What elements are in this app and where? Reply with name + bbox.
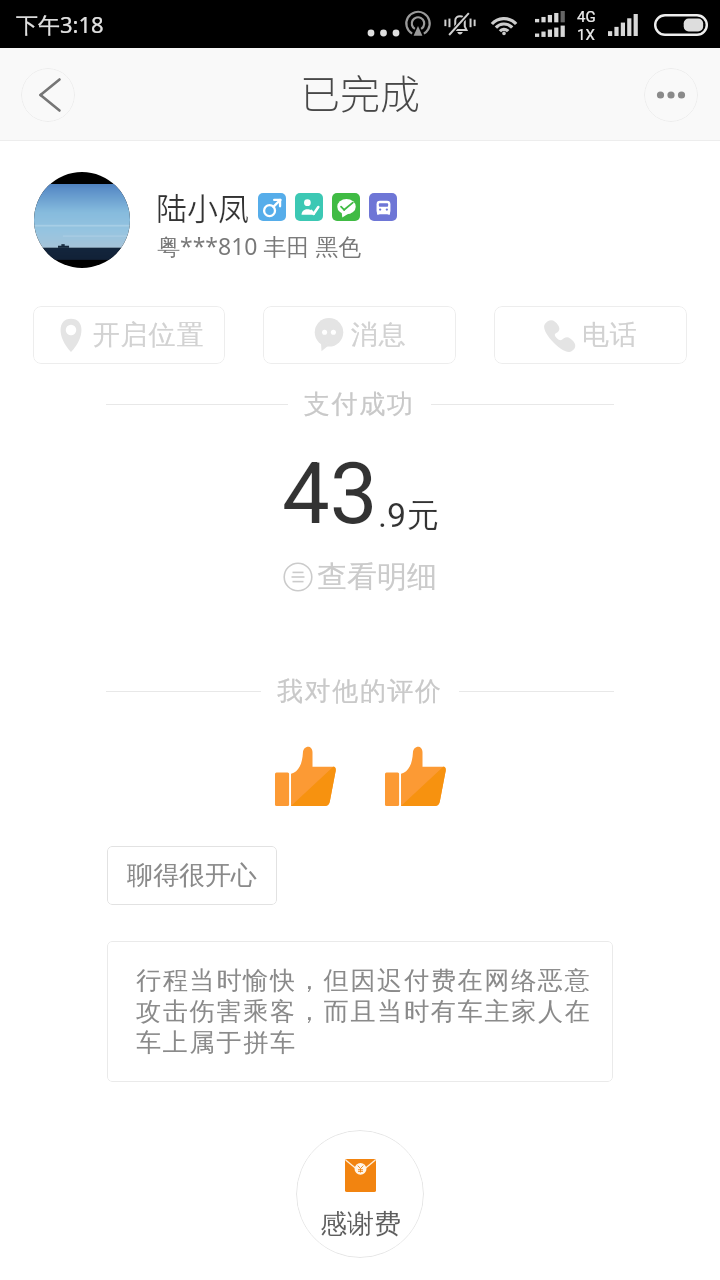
button[interactable]: 开启位置	[33, 306, 225, 364]
button[interactable]: 聊得很开心	[107, 846, 277, 905]
button[interactable]: 感谢费	[296, 1130, 424, 1258]
button[interactable]: Back	[21, 68, 75, 122]
staticText: 我对他的评价	[277, 675, 443, 708]
staticText: 感谢费	[320, 1207, 401, 1241]
staticText: 电话	[582, 318, 638, 352]
button[interactable]: 消息	[263, 306, 456, 364]
staticText: 聊得很开心	[127, 859, 257, 892]
staticText: 行程当时愉快，但因迟付费在网络恶意 攻击伤害乘客，而且当时有车主家人在 车上属于…	[136, 965, 592, 1059]
staticText: 43	[282, 444, 378, 544]
button[interactable]: 电话	[494, 306, 687, 364]
staticText: 已完成	[300, 63, 420, 121]
staticText: 消息	[351, 318, 407, 352]
staticText: .9	[378, 495, 407, 535]
staticText: 开启位置	[93, 318, 205, 352]
staticText: 1X	[577, 26, 595, 44]
staticText: 查看明细	[317, 558, 437, 596]
staticText: 4G	[577, 8, 596, 26]
button[interactable]: 查看明细	[283, 558, 437, 596]
staticText: 下午3:18	[16, 9, 104, 39]
staticText: 粤***810 丰田 黑色	[157, 230, 362, 261]
staticText: 元	[407, 495, 439, 535]
staticText: 支付成功	[304, 388, 415, 421]
staticText: 陆小凤	[156, 184, 249, 229]
button[interactable]: More options	[644, 68, 698, 122]
